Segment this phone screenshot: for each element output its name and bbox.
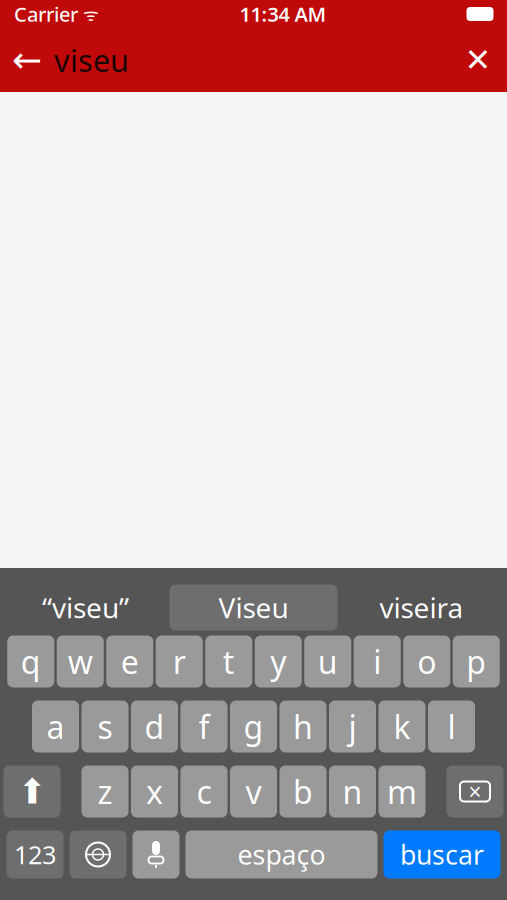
staticText: s xyxy=(97,705,112,748)
staticText: buscar xyxy=(400,837,484,872)
button[interactable]: f xyxy=(180,700,227,752)
staticText: ← xyxy=(12,40,42,80)
staticText: 123 xyxy=(14,838,56,871)
staticText: espaço xyxy=(237,837,325,872)
staticText: j xyxy=(348,705,356,748)
button[interactable]: l xyxy=(428,700,475,752)
button[interactable]: espaço xyxy=(185,830,377,878)
button[interactable]: n xyxy=(329,765,376,817)
button[interactable]: Clear search xyxy=(449,28,507,92)
button[interactable]: q xyxy=(7,635,54,687)
staticText: c xyxy=(196,770,211,813)
button[interactable]: viseira xyxy=(337,584,505,630)
staticText: p xyxy=(466,640,486,683)
button[interactable]: buscar xyxy=(383,830,500,878)
button[interactable]: j xyxy=(329,700,376,752)
button[interactable]: 123 xyxy=(6,830,63,878)
staticText: i xyxy=(373,640,381,683)
staticText: n xyxy=(342,770,362,813)
button[interactable]: m xyxy=(378,765,425,817)
staticText: ⬆ xyxy=(17,772,46,811)
staticText: m xyxy=(387,770,417,813)
staticText: q xyxy=(21,640,41,683)
staticText: t xyxy=(223,640,235,683)
staticText: Viseu xyxy=(218,589,288,626)
staticText: l xyxy=(447,705,455,748)
button[interactable]: t xyxy=(205,635,252,687)
button[interactable]: Next keyboard xyxy=(69,830,126,878)
button[interactable]: b xyxy=(279,765,326,817)
staticText: viseira xyxy=(379,589,463,626)
button[interactable]: w xyxy=(57,635,104,687)
staticText: ✕ xyxy=(464,42,491,78)
staticText: a xyxy=(46,705,64,748)
staticText: g xyxy=(243,705,263,748)
staticText: o xyxy=(417,640,436,683)
staticText: 11:34 AM xyxy=(239,1,326,27)
staticText: b xyxy=(293,770,313,813)
button[interactable]: p xyxy=(453,635,500,687)
staticText: viseu xyxy=(54,40,129,80)
staticText: f xyxy=(198,705,209,748)
button[interactable]: r xyxy=(156,635,203,687)
staticText: y xyxy=(270,640,286,683)
button[interactable]: g xyxy=(230,700,277,752)
staticText: w xyxy=(68,640,93,683)
button[interactable]: x xyxy=(131,765,178,817)
button[interactable]: o xyxy=(403,635,450,687)
staticText: ᯤ xyxy=(78,2,99,25)
staticText: v xyxy=(245,770,261,813)
button[interactable]: u xyxy=(304,635,351,687)
staticText: x xyxy=(146,770,163,813)
staticText: r xyxy=(173,640,186,683)
staticText: e xyxy=(121,640,139,683)
button[interactable]: c xyxy=(180,765,227,817)
staticText: h xyxy=(293,705,313,748)
staticText: z xyxy=(97,770,112,813)
button[interactable]: Dictation xyxy=(132,830,179,878)
button[interactable]: d xyxy=(131,700,178,752)
staticText: k xyxy=(393,705,410,748)
staticText: × xyxy=(468,776,481,806)
button[interactable]: k xyxy=(378,700,425,752)
button[interactable]: Shift xyxy=(3,765,60,817)
button[interactable]: z xyxy=(81,765,128,817)
staticText: u xyxy=(318,640,338,683)
button[interactable]: “viseu” xyxy=(1,584,169,630)
staticText: d xyxy=(144,705,164,748)
button[interactable]: s xyxy=(81,700,128,752)
button[interactable]: Delete xyxy=(446,765,503,817)
button[interactable]: i xyxy=(354,635,401,687)
button[interactable]: a xyxy=(32,700,79,752)
button[interactable]: e xyxy=(106,635,153,687)
button[interactable]: v xyxy=(230,765,277,817)
button[interactable]: h xyxy=(279,700,326,752)
staticText: Carrier xyxy=(14,1,78,27)
button[interactable]: Viseu xyxy=(169,584,337,630)
button[interactable]: y xyxy=(255,635,302,687)
staticText: “viseu” xyxy=(42,589,129,626)
button[interactable]: Back xyxy=(0,28,54,92)
